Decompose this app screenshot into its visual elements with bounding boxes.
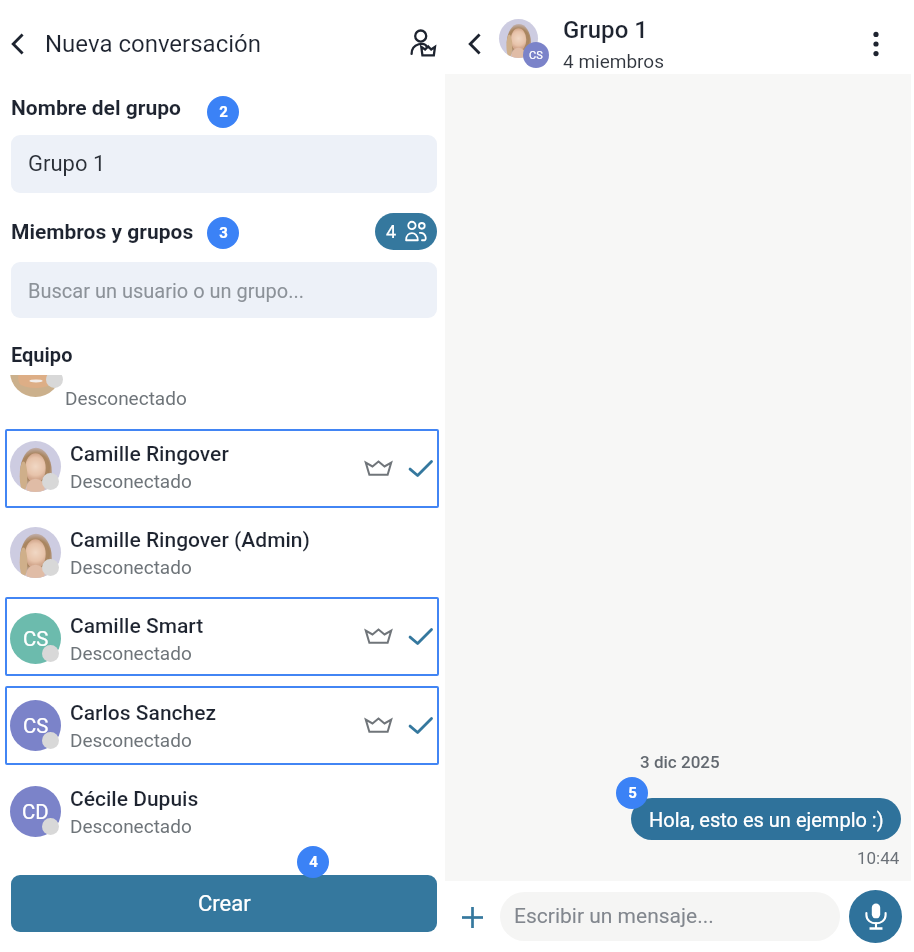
- button[interactable]: CS: [5, 597, 439, 676]
- staticText: CS: [529, 49, 543, 62]
- button[interactable]: Grupo 1: [11, 135, 437, 193]
- staticText: Crear: [198, 891, 251, 917]
- button[interactable]: Crear: [11, 875, 437, 932]
- staticText: Desconectado: [65, 387, 187, 408]
- staticText: Camille Ringover (Admin): [70, 528, 310, 553]
- button[interactable]: Añadir miembro: [404, 25, 442, 63]
- staticText: 4: [309, 853, 318, 871]
- staticText: 4 miembros: [563, 50, 664, 72]
- staticText: Desconectado: [70, 815, 192, 837]
- button[interactable]: Atrás: [460, 29, 490, 59]
- staticText: Camille Smart: [70, 614, 204, 639]
- staticText: Cécile Dupuis: [70, 787, 199, 812]
- staticText: CD: [22, 800, 49, 824]
- staticText: 3 dic 2025: [640, 752, 720, 772]
- button[interactable]: Escribir un mensaje...: [500, 892, 840, 941]
- staticText: Grupo 1: [563, 16, 648, 44]
- staticText: CS: [23, 714, 49, 738]
- staticText: Hola, esto es un ejemplo :): [649, 808, 884, 831]
- button[interactable]: Hola, esto es un ejemplo :): [631, 798, 901, 840]
- button[interactable]: Camille Ringover: [5, 429, 439, 508]
- staticText: Carlos Sanchez: [70, 701, 217, 726]
- staticText: Desconectado: [70, 470, 192, 492]
- staticText: Buscar un usuario o un grupo...: [28, 279, 305, 302]
- staticText: Miembros y grupos: [11, 220, 194, 245]
- staticText: 3: [219, 224, 228, 242]
- staticText: Desconectado: [70, 642, 192, 664]
- staticText: Desconectado: [70, 729, 192, 751]
- staticText: Desconectado: [70, 556, 192, 578]
- staticText: 5: [628, 784, 637, 802]
- button[interactable]: Atrás: [3, 29, 33, 59]
- button[interactable]: Añadir: [452, 897, 492, 937]
- staticText: 10:44: [857, 848, 900, 868]
- staticText: 4: [386, 221, 397, 242]
- staticText: CS: [23, 627, 49, 651]
- button[interactable]: CS: [5, 686, 439, 765]
- staticText: 2: [219, 103, 228, 121]
- button[interactable]: 4: [375, 213, 437, 250]
- staticText: Nombre del grupo: [11, 96, 181, 121]
- staticText: Nueva conversación: [45, 30, 261, 58]
- staticText: Grupo 1: [28, 151, 106, 177]
- button[interactable]: CD: [5, 771, 439, 850]
- button[interactable]: Camille Ringover (Admin): [5, 512, 439, 591]
- staticText: Equipo: [11, 343, 73, 366]
- button[interactable]: Más opciones: [860, 28, 892, 60]
- staticText: Escribir un mensaje...: [514, 904, 714, 929]
- staticText: Camille Ringover: [70, 442, 229, 467]
- button[interactable]: Buscar un usuario o un grupo...: [11, 262, 437, 318]
- button[interactable]: Grabar audio: [849, 890, 902, 943]
